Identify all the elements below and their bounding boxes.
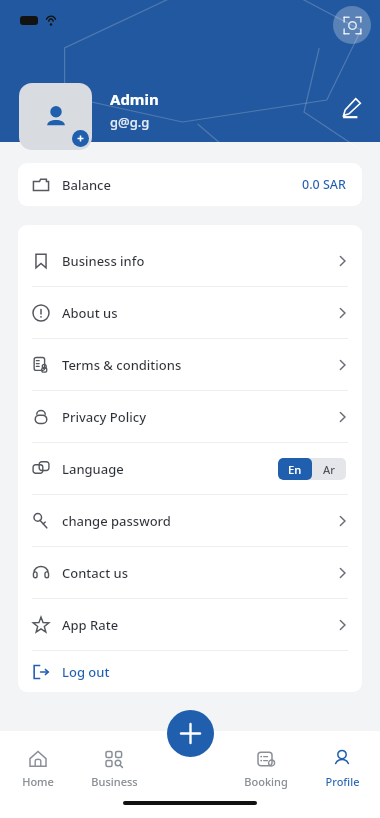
staticText: Balance — [62, 176, 111, 194]
staticText: change password — [62, 512, 171, 530]
button[interactable]: Business — [76, 739, 152, 818]
button[interactable]: Screenshot — [333, 6, 371, 44]
button[interactable]: Add — [167, 710, 214, 757]
staticText: Terms & conditions — [62, 356, 182, 374]
button[interactable] — [19, 83, 92, 150]
button[interactable]: Booking — [228, 739, 304, 818]
staticText: Ar — [323, 462, 335, 477]
staticText: Business info — [62, 252, 145, 270]
button[interactable]: Privacy Policy — [18, 391, 362, 442]
staticText: Home — [22, 774, 54, 789]
button[interactable]: Ar — [312, 458, 346, 480]
staticText: Booking — [244, 774, 288, 789]
staticText: 0.0 SAR — [302, 176, 346, 193]
button[interactable]: Add photo — [72, 130, 89, 147]
button[interactable]: Contact us — [18, 547, 362, 598]
button[interactable]: Edit profile — [336, 92, 366, 122]
staticText: En — [288, 462, 302, 477]
staticText: Privacy Policy — [62, 408, 146, 426]
staticText: Business — [91, 774, 138, 789]
button[interactable]: Log out — [18, 651, 362, 692]
button[interactable]: Language — [18, 443, 362, 494]
staticText: Profile — [325, 774, 360, 789]
button[interactable]: Terms & conditions — [18, 339, 362, 390]
button[interactable]: En — [278, 458, 312, 480]
staticText: g@g.g — [110, 113, 150, 131]
staticText: About us — [62, 304, 118, 322]
button[interactable]: change password — [18, 495, 362, 546]
button[interactable]: Balance — [18, 163, 362, 206]
staticText: Log out — [62, 663, 110, 681]
button[interactable]: About us — [18, 287, 362, 338]
button[interactable]: App Rate — [18, 599, 362, 650]
staticText: Admin — [110, 89, 159, 109]
button[interactable]: Home — [0, 739, 76, 818]
staticText: App Rate — [62, 616, 119, 634]
button[interactable]: Profile — [304, 739, 380, 818]
staticText: Contact us — [62, 564, 128, 582]
staticText: Language — [62, 460, 124, 478]
button[interactable]: Business info — [18, 235, 362, 286]
